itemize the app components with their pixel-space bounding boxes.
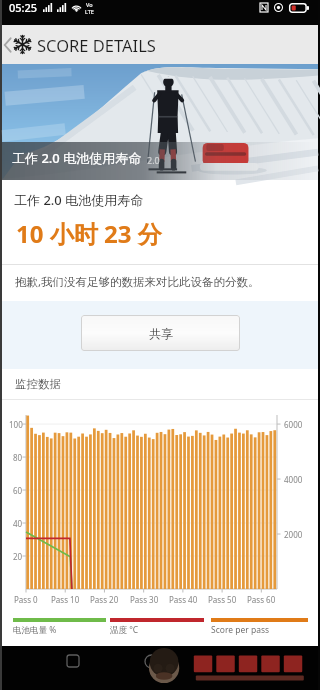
button[interactable]: 共享: [81, 315, 240, 351]
staticText: 6000: [284, 419, 303, 430]
staticText: 80: [13, 452, 23, 463]
staticText: Vo: [86, 1, 93, 8]
staticText: 监控数据: [15, 377, 61, 391]
staticText: 2.0: [147, 154, 160, 166]
staticText: 4000: [284, 474, 303, 485]
staticText: 10 小时 23 分: [16, 217, 162, 250]
staticText: 工作 2.0 电池使用寿命: [14, 191, 144, 209]
staticText: 抱歉,我们没有足够的数据来对比此设备的分数。: [15, 274, 260, 290]
other: Back: [2, 25, 12, 64]
staticText: 2000: [284, 529, 303, 540]
staticText: Pass 50: [208, 594, 237, 605]
staticText: Pass 10: [51, 594, 80, 605]
staticText: Pass 0: [14, 594, 38, 605]
staticText: 60: [13, 485, 23, 496]
staticText: Pass 40: [169, 594, 198, 605]
staticText: LTE: [85, 8, 94, 15]
staticText: Pass 20: [90, 594, 119, 605]
staticText: 100: [9, 419, 23, 430]
staticText: 工作 2.0 电池使用寿命: [12, 149, 142, 167]
button[interactable]: Back: [2, 25, 318, 64]
staticText: Pass 30: [130, 594, 159, 605]
staticText: 20: [13, 551, 23, 562]
staticText: 温度 °C: [110, 624, 139, 636]
button[interactable]: Home: [58, 646, 88, 676]
button[interactable]: Recents: [136, 646, 166, 676]
staticText: 电池电量 %: [13, 624, 57, 636]
staticText: 共享: [149, 326, 173, 341]
staticText: SCORE DETAILS: [37, 34, 156, 56]
staticText: 05:25: [9, 0, 38, 15]
staticText: Score per pass: [211, 624, 270, 636]
staticText: 40: [13, 518, 23, 529]
staticText: Pass 60: [247, 594, 276, 605]
